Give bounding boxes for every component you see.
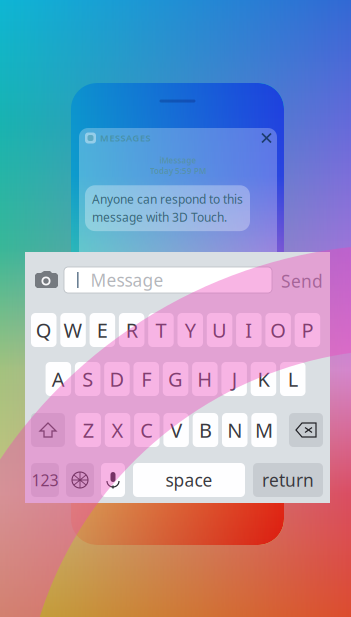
staticText: V xyxy=(170,417,182,443)
staticText: Z xyxy=(83,417,94,443)
staticText: H xyxy=(197,366,212,392)
staticText: I xyxy=(245,317,252,343)
staticText: space xyxy=(165,468,212,491)
staticText: K xyxy=(257,366,269,392)
button[interactable]: M xyxy=(251,413,277,447)
button[interactable]: I xyxy=(236,313,262,347)
staticText: Send xyxy=(281,269,323,292)
button[interactable]: A xyxy=(46,362,71,396)
button[interactable]: D xyxy=(104,362,130,396)
button[interactable]: Delete xyxy=(289,413,323,447)
button[interactable]: L xyxy=(280,362,305,396)
staticText: Q xyxy=(36,317,52,343)
button[interactable]: R xyxy=(119,313,144,347)
button[interactable]: N xyxy=(222,413,247,447)
button[interactable]: G xyxy=(163,362,188,396)
staticText: E xyxy=(97,317,108,343)
staticText: C xyxy=(140,417,153,443)
button[interactable]: Switch keyboard xyxy=(66,463,94,497)
staticText: 123 xyxy=(31,469,58,491)
staticText: Today 5:59 PM xyxy=(150,166,206,176)
button[interactable]: Dictate xyxy=(101,463,125,497)
staticText: Anyone can respond to this message with … xyxy=(92,191,243,225)
button[interactable]: Send xyxy=(281,271,325,291)
staticText: P xyxy=(301,317,313,343)
staticText: F xyxy=(141,366,151,392)
button[interactable]: Shift xyxy=(31,413,65,447)
button[interactable]: J xyxy=(221,362,247,396)
staticText: B xyxy=(199,417,212,443)
staticText: J xyxy=(232,366,237,392)
button[interactable]: Q xyxy=(31,313,56,347)
staticText: Y xyxy=(185,317,196,343)
button[interactable]: return xyxy=(253,463,323,497)
button[interactable]: 123 xyxy=(31,463,59,497)
staticText: iMessage xyxy=(159,155,196,166)
staticText: R xyxy=(126,317,138,343)
button[interactable]: C xyxy=(134,413,160,447)
staticText: return xyxy=(262,468,314,491)
button[interactable]: V xyxy=(163,413,189,447)
button[interactable]: F xyxy=(133,362,159,396)
staticText: X xyxy=(111,417,123,443)
button[interactable]: E xyxy=(90,313,115,347)
button[interactable]: K xyxy=(251,362,276,396)
button[interactable]: S xyxy=(75,362,100,396)
button[interactable]: U xyxy=(207,313,232,347)
staticText: L xyxy=(288,366,298,392)
staticText: MESSAGES xyxy=(100,132,150,144)
button[interactable]: O xyxy=(265,313,291,347)
button[interactable]: T xyxy=(148,313,174,347)
button[interactable]: Y xyxy=(177,313,203,347)
button[interactable]: P xyxy=(295,313,320,347)
staticText: W xyxy=(63,317,82,343)
staticText: O xyxy=(270,317,286,343)
button[interactable]: Close notification xyxy=(262,133,271,142)
staticText: D xyxy=(109,366,124,392)
button[interactable]: W xyxy=(60,313,86,347)
staticText: S xyxy=(82,366,93,392)
staticText: N xyxy=(227,417,242,443)
button[interactable]: B xyxy=(193,413,218,447)
staticText: M xyxy=(255,417,273,443)
staticText: A xyxy=(52,366,65,392)
staticText: U xyxy=(212,317,227,343)
staticText: Message xyxy=(90,268,163,291)
button[interactable]: H xyxy=(192,362,218,396)
staticText: G xyxy=(168,366,183,392)
button[interactable]: X xyxy=(105,413,130,447)
staticText: T xyxy=(155,317,166,343)
button[interactable]: space xyxy=(133,463,245,497)
button[interactable]: Z xyxy=(75,413,101,447)
